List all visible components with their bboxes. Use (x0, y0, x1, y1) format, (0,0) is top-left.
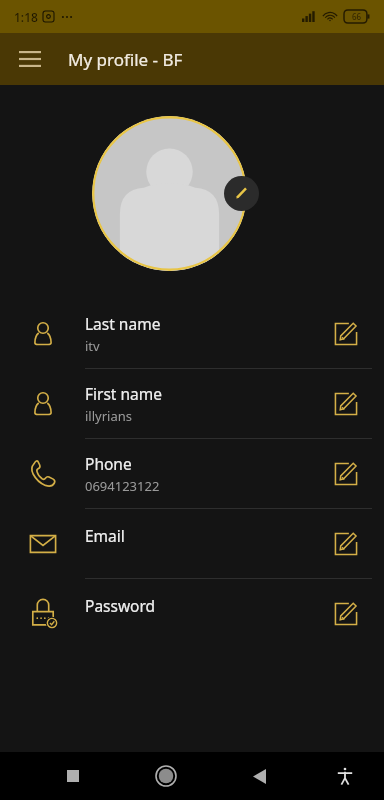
button[interactable]: Edit profile photo (224, 176, 259, 211)
staticText: My profile - BF (68, 48, 183, 71)
staticText: Email (85, 525, 125, 546)
button[interactable]: Edit Last name (326, 314, 366, 354)
button[interactable]: Phone (0, 439, 384, 508)
button[interactable]: Edit Email (326, 524, 366, 564)
staticText: 0694123122 (85, 477, 160, 495)
staticText: 66 (352, 11, 362, 22)
button[interactable]: Edit First name (326, 384, 366, 424)
button[interactable]: Open navigation menu (10, 39, 50, 79)
staticText: Last name (85, 313, 161, 334)
staticText: 1:18 (14, 9, 38, 25)
staticText: illyrians (85, 407, 132, 425)
button[interactable]: Password (0, 579, 384, 648)
button[interactable]: Accessibility menu (323, 754, 367, 798)
button[interactable]: Home (144, 754, 188, 798)
button[interactable]: Recent apps (51, 754, 95, 798)
staticText: First name (85, 383, 163, 404)
button[interactable]: Edit Password (326, 594, 366, 634)
button[interactable]: First name (0, 369, 384, 438)
button[interactable]: Edit Phone (326, 454, 366, 494)
staticText: Password (85, 595, 156, 616)
button[interactable]: Profile photo (92, 116, 247, 271)
staticText: itv (85, 337, 100, 355)
button[interactable]: Email (0, 509, 384, 578)
button[interactable]: Last name (0, 299, 384, 368)
staticText: Phone (85, 453, 132, 474)
button[interactable]: Back (237, 754, 281, 798)
